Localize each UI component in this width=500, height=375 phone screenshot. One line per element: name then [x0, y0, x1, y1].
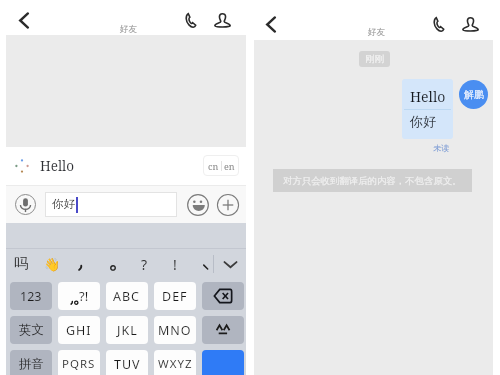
staticText: ABC: [113, 288, 141, 305]
button[interactable]: ABC: [106, 282, 148, 310]
staticText: 未读: [433, 143, 450, 153]
staticText: 好友: [120, 24, 137, 35]
button[interactable]: Hello: [402, 79, 453, 139]
button[interactable]: [202, 350, 244, 375]
button[interactable]: Back: [17, 11, 31, 30]
button[interactable]: Call: [184, 12, 197, 29]
button[interactable]: GHI: [58, 316, 100, 344]
button[interactable]: 吗: [6, 249, 36, 279]
button[interactable]: ?!: [58, 282, 100, 310]
staticText: PQRS: [62, 356, 96, 372]
staticText: ?!: [79, 287, 89, 305]
staticText: Hello: [410, 87, 446, 106]
staticText: GHI: [66, 322, 92, 339]
staticText: 刚刚: [365, 53, 384, 65]
button[interactable]: ?: [129, 249, 159, 279]
staticText: 解鹏: [464, 88, 484, 101]
button[interactable]: TUV: [106, 350, 148, 375]
staticText: 你好: [410, 113, 436, 129]
button[interactable]: Hide keyboard: [217, 249, 243, 279]
staticText: en: [224, 160, 235, 172]
staticText: 好友: [368, 27, 385, 38]
button[interactable]: 123: [10, 282, 52, 310]
button[interactable]: Call: [432, 16, 445, 33]
staticText: 对方只会收到翻译后的内容，不包含原文。: [283, 175, 462, 187]
button[interactable]: DEF: [154, 282, 196, 310]
staticText: 你好: [52, 197, 76, 212]
button[interactable]: 拼音: [10, 350, 52, 375]
button[interactable]: !: [160, 249, 190, 279]
button[interactable]: 你好: [45, 192, 177, 217]
button[interactable]: Profile: [214, 12, 231, 28]
button[interactable]: [191, 249, 221, 279]
button[interactable]: 英文: [10, 316, 52, 344]
button[interactable]: Back: [264, 15, 278, 34]
button[interactable]: 解鹏: [459, 80, 488, 109]
button[interactable]: cn: [203, 155, 239, 176]
button[interactable]: MNO: [154, 316, 196, 344]
staticText: Hello: [40, 157, 75, 175]
staticText: ?: [141, 255, 148, 274]
button[interactable]: [98, 249, 128, 279]
button[interactable]: More options: [217, 194, 239, 216]
staticText: 123: [20, 288, 42, 305]
button[interactable]: [202, 316, 244, 344]
staticText: JKL: [117, 322, 138, 339]
staticText: 拼音: [19, 356, 44, 372]
staticText: 英文: [19, 322, 44, 338]
staticText: MNO: [158, 322, 192, 339]
button[interactable]: JKL: [106, 316, 148, 344]
button[interactable]: Profile: [462, 16, 479, 32]
button[interactable]: PQRS: [58, 350, 100, 375]
button[interactable]: [66, 249, 96, 279]
staticText: WXYZ: [158, 356, 193, 372]
button[interactable]: 👋: [37, 249, 67, 279]
staticText: DEF: [162, 288, 188, 305]
button[interactable]: [202, 282, 244, 310]
staticText: !: [173, 255, 177, 274]
button[interactable]: Voice input: [15, 194, 36, 215]
staticText: 👋: [44, 257, 61, 272]
staticText: cn: [208, 160, 219, 172]
button[interactable]: WXYZ: [154, 350, 196, 375]
button[interactable]: Emoji: [187, 194, 209, 216]
staticText: TUV: [114, 356, 141, 373]
staticText: 吗: [14, 255, 28, 273]
